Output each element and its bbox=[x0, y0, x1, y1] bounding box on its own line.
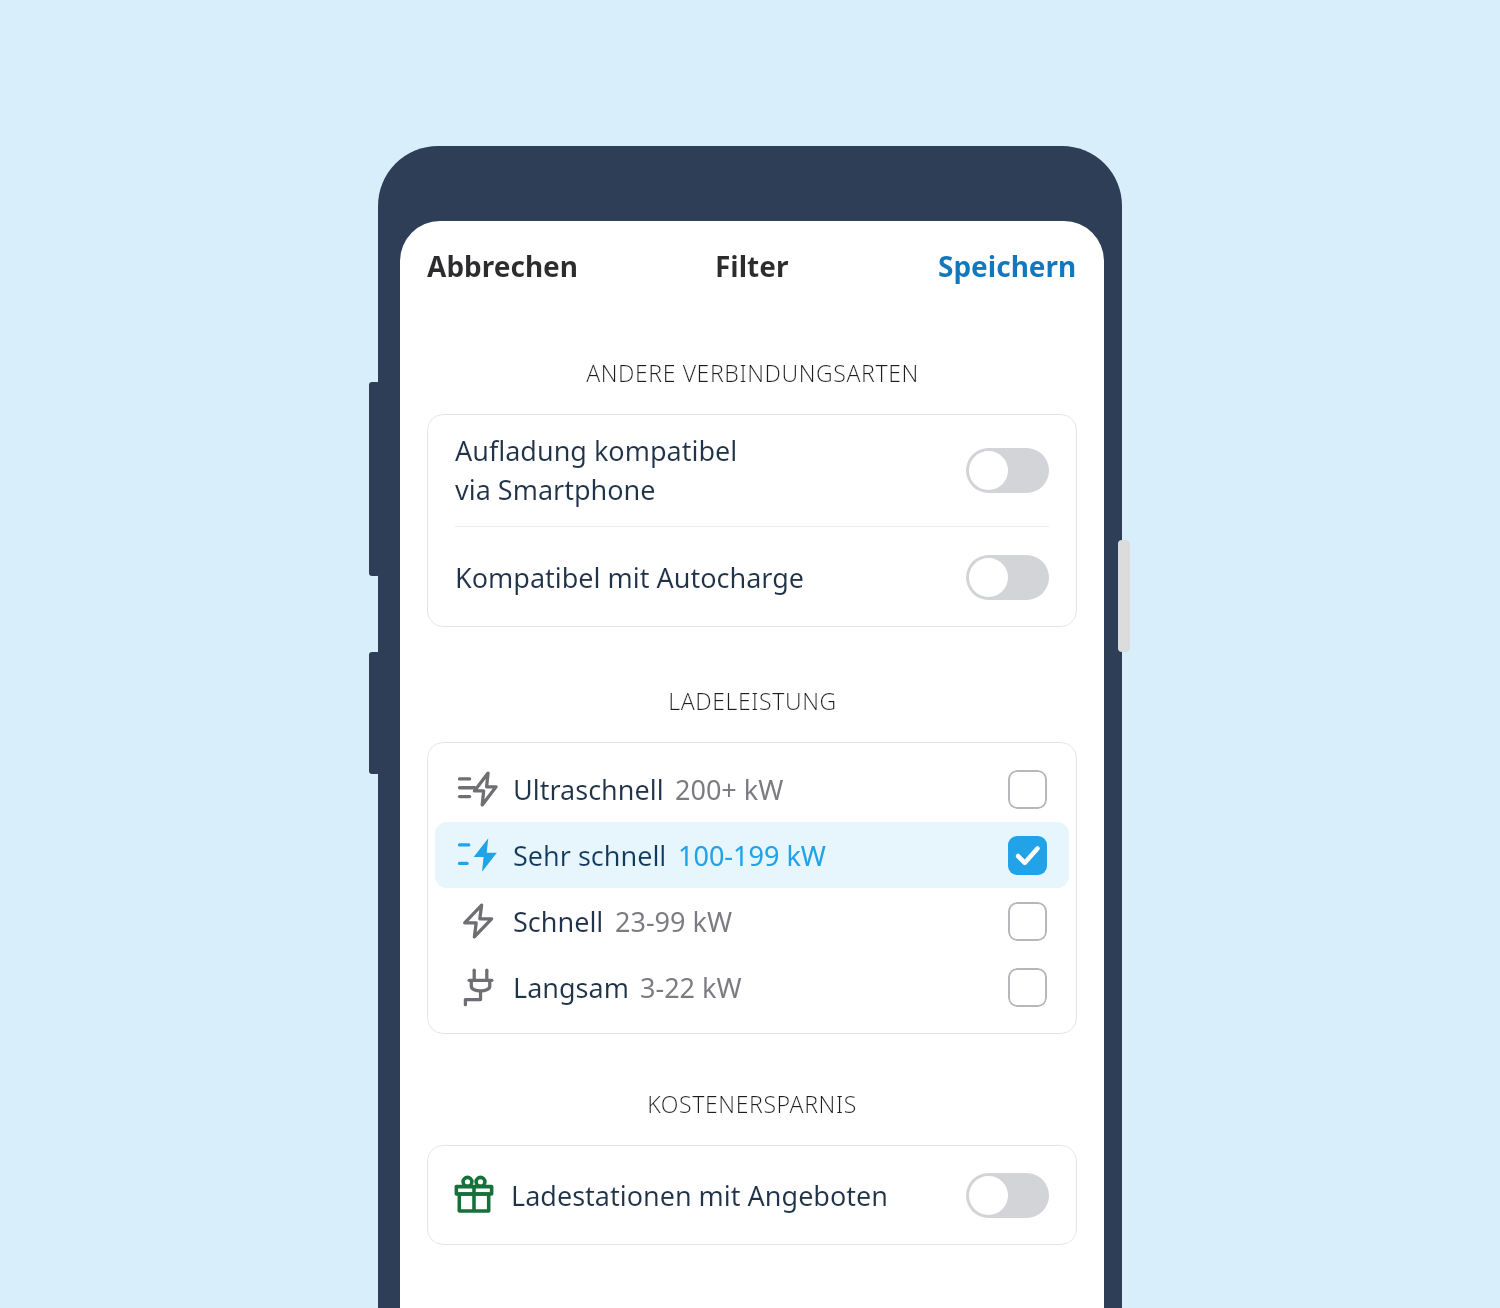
staticText: 200+ kW bbox=[675, 771, 784, 808]
staticText: Ladestationen mit Angeboten bbox=[511, 1177, 966, 1214]
staticText: Ultraschnell bbox=[513, 771, 664, 808]
staticText: 100-199 kW bbox=[678, 837, 826, 874]
other: Aufladung kompatibel via Smartphone bbox=[966, 448, 1049, 493]
button[interactable]: Kompatibel mit Autocharge bbox=[427, 527, 1077, 627]
staticText: Kompatibel mit Autocharge bbox=[455, 559, 966, 596]
other: Kompatibel mit Autocharge bbox=[966, 555, 1049, 600]
staticText: LADELEISTUNG bbox=[668, 685, 837, 716]
staticText: Speichern bbox=[938, 247, 1077, 285]
button[interactable]: Ladestationen mit Angeboten bbox=[427, 1145, 1077, 1245]
staticText: Abbrechen bbox=[427, 247, 579, 285]
staticText: 23-99 kW bbox=[615, 903, 733, 940]
other: Ladestationen mit Angeboten bbox=[966, 1173, 1049, 1218]
button[interactable]: Aufladung kompatibel via Smartphone bbox=[427, 414, 1077, 526]
button[interactable]: Langsam bbox=[435, 954, 1069, 1020]
staticText: KOSTENERSPARNIS bbox=[647, 1088, 857, 1119]
staticText: Sehr schnell bbox=[513, 837, 667, 874]
staticText: Aufladung kompatibel via Smartphone bbox=[455, 432, 966, 508]
button[interactable]: Abbrechen bbox=[413, 238, 593, 294]
button[interactable]: Schnell bbox=[435, 888, 1069, 954]
button[interactable]: Speichern bbox=[924, 238, 1091, 294]
staticText: Filter bbox=[715, 247, 789, 285]
button[interactable]: Ultraschnell bbox=[435, 756, 1069, 822]
staticText: Langsam bbox=[513, 969, 629, 1006]
staticText: 3-22 kW bbox=[640, 969, 742, 1006]
button[interactable]: Sehr schnell bbox=[435, 822, 1069, 888]
staticText: ANDERE VERBINDUNGSARTEN bbox=[586, 357, 919, 388]
staticText: Schnell bbox=[513, 903, 604, 940]
